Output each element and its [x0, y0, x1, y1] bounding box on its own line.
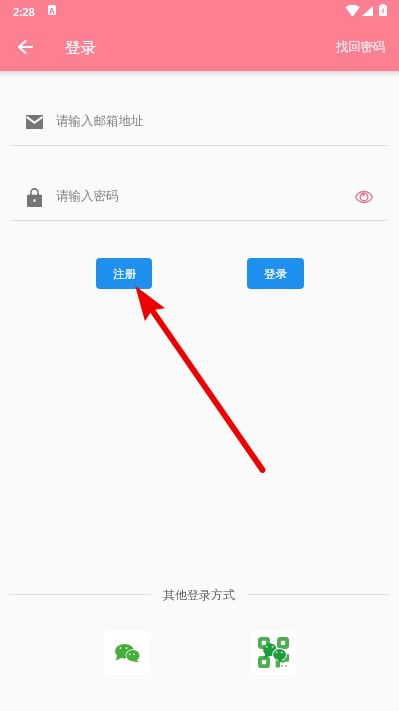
- staticText: 登录: [264, 267, 287, 281]
- button[interactable]: 登录: [247, 258, 304, 289]
- staticText: 其他登录方式: [163, 587, 235, 602]
- button[interactable]: Back: [11, 32, 40, 61]
- staticText: 2:28: [13, 4, 35, 19]
- staticText: 请输入邮箱地址: [56, 113, 144, 129]
- staticText: 注册: [113, 267, 136, 281]
- button[interactable]: Toggle password visibility: [352, 184, 376, 210]
- button[interactable]: WeChat login: [104, 630, 149, 675]
- button[interactable]: [11, 103, 387, 146]
- button[interactable]: 找回密码: [336, 21, 386, 71]
- staticText: 请输入密码: [56, 188, 119, 204]
- staticText: A: [49, 5, 55, 15]
- button[interactable]: 注册: [96, 258, 152, 289]
- button[interactable]: Scan QR code login: [251, 630, 296, 675]
- staticText: 找回密码: [336, 39, 386, 54]
- staticText: 登录: [65, 38, 96, 58]
- button[interactable]: [11, 178, 387, 221]
